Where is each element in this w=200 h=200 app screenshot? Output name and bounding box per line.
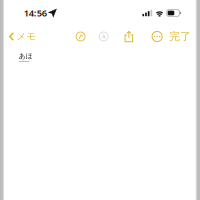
staticText: メモ [16, 31, 36, 42]
button[interactable]: Undo [72, 26, 89, 46]
staticText: あほ [19, 52, 33, 60]
button[interactable]: メモ [4, 26, 36, 47]
staticText: 14:56 [24, 7, 47, 19]
staticText: 完了 [169, 30, 191, 43]
button[interactable]: More [149, 26, 166, 46]
button[interactable]: Redo [95, 26, 112, 46]
button[interactable]: Share [121, 26, 137, 47]
button[interactable]: 完了 [166, 25, 196, 48]
